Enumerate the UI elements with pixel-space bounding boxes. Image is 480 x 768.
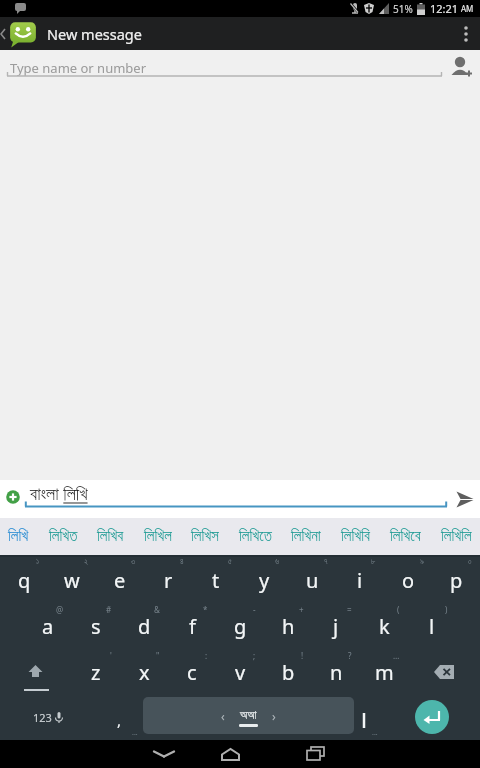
button[interactable]: x — [120, 649, 168, 695]
button[interactable]: লিখিত — [49, 529, 78, 544]
staticText: h — [282, 613, 295, 640]
button[interactable]: ‹ — [143, 697, 354, 734]
button[interactable]: f — [168, 603, 216, 649]
staticText: 123 — [33, 710, 52, 725]
button[interactable]: p — [432, 557, 480, 603]
staticText: t — [212, 567, 220, 594]
button[interactable]: u — [288, 557, 336, 603]
button[interactable]: লিখিতে — [239, 529, 272, 544]
staticText: 12:21 — [430, 1, 459, 16]
staticText: … — [393, 650, 400, 661]
staticText: e — [114, 567, 126, 594]
button[interactable]: h — [264, 603, 312, 649]
staticText: , — [117, 710, 122, 730]
staticText: ? — [348, 650, 352, 661]
staticText: o — [402, 567, 415, 594]
button[interactable]: s — [72, 603, 120, 649]
staticText: ৮ — [371, 558, 376, 566]
button[interactable]: , — [96, 695, 142, 740]
staticText: j — [333, 613, 339, 640]
button[interactable] — [408, 649, 480, 695]
button[interactable]: c — [168, 649, 216, 695]
staticText: লিখি — [8, 529, 29, 544]
staticText: # — [106, 604, 112, 615]
button[interactable]: লিখিবি — [341, 529, 371, 544]
staticText: ) — [445, 604, 448, 615]
staticText: লিখিবে — [390, 529, 421, 544]
button[interactable] — [210, 740, 250, 768]
staticText: লিখিত — [49, 529, 78, 544]
button[interactable]: v — [216, 649, 264, 695]
button[interactable] — [295, 740, 335, 768]
staticText: p — [450, 567, 463, 594]
button[interactable]: লিখি — [8, 529, 29, 544]
staticText: : — [205, 650, 208, 661]
staticText: v — [235, 659, 246, 686]
staticText: লিখিলি — [441, 529, 472, 544]
button[interactable]: b — [264, 649, 312, 695]
staticText: ... — [372, 728, 378, 738]
button[interactable]: r — [144, 557, 192, 603]
button[interactable] — [0, 649, 72, 695]
staticText: ৫ — [228, 558, 232, 566]
button[interactable]: লিখিনা — [291, 529, 321, 544]
staticText: c — [187, 659, 197, 686]
staticText: লিখিবি — [341, 529, 371, 544]
staticText: @ — [56, 604, 64, 615]
button[interactable]: o — [384, 557, 432, 603]
staticText: x — [139, 659, 150, 686]
button[interactable]: w — [48, 557, 96, 603]
button[interactable]: e — [96, 557, 144, 603]
staticText: r — [164, 567, 173, 594]
button[interactable] — [144, 740, 184, 768]
button[interactable] — [342, 695, 386, 740]
button[interactable]: লিখিল — [144, 529, 172, 544]
button[interactable]: a — [24, 603, 72, 649]
staticText: " — [156, 650, 160, 661]
staticText: ‹ — [221, 708, 225, 724]
button[interactable]: d — [120, 603, 168, 649]
button[interactable]: l — [408, 603, 456, 649]
staticText: m — [375, 659, 394, 686]
staticText: লিখিল — [144, 529, 172, 544]
button[interactable]: লিখিলি — [441, 529, 472, 544]
button[interactable]: Type name or number — [0, 50, 480, 90]
button[interactable] — [448, 55, 474, 81]
button[interactable] — [452, 20, 480, 48]
staticText: ' — [110, 650, 112, 661]
staticText: বাংলা লিখি — [30, 481, 88, 506]
staticText: ০ — [468, 558, 472, 566]
button[interactable]: m — [360, 649, 408, 695]
staticText: › — [272, 708, 276, 724]
button[interactable]: y — [240, 557, 288, 603]
button[interactable]: k — [360, 603, 408, 649]
button[interactable] — [6, 490, 20, 504]
staticText: a — [42, 613, 54, 640]
button[interactable]: j — [312, 603, 360, 649]
button[interactable]: i — [336, 557, 384, 603]
staticText: g — [234, 613, 247, 640]
staticText: ২ — [84, 558, 88, 566]
button[interactable]: লিখিবে — [390, 529, 421, 544]
staticText: 51% — [393, 2, 413, 16]
staticText: k — [379, 613, 390, 640]
button[interactable] — [455, 490, 474, 509]
button[interactable]: 123 — [0, 695, 96, 740]
staticText: Type name or number — [10, 59, 147, 77]
staticText: u — [306, 567, 319, 594]
button[interactable]: n — [312, 649, 360, 695]
staticText: b — [282, 659, 295, 686]
button[interactable]: z — [72, 649, 120, 695]
button[interactable]: g — [216, 603, 264, 649]
staticText: ( — [397, 604, 400, 615]
button[interactable] — [415, 700, 449, 734]
staticText: লিখিতে — [239, 529, 272, 544]
button[interactable]: লিখিস — [191, 529, 219, 544]
staticText: লিখিস — [191, 529, 219, 544]
staticText: লিখিনা — [291, 529, 321, 544]
button[interactable]: লিখিব — [97, 529, 124, 544]
button[interactable]: t — [192, 557, 240, 603]
staticText: ১ — [36, 558, 40, 566]
button[interactable]: New message — [0, 17, 142, 50]
button[interactable]: q — [0, 557, 48, 603]
